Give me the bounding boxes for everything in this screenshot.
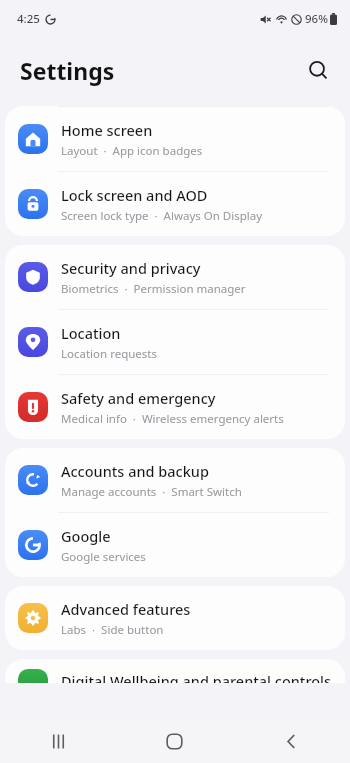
staticText: Location requests [61, 346, 157, 362]
button[interactable]: Lock screen and AOD [5, 172, 345, 236]
staticText: Manage accounts · Smart Switch [61, 484, 242, 500]
button[interactable]: Back [233, 719, 350, 763]
staticText: Safety and emergency [61, 388, 216, 408]
staticText: Medical info · Wireless emergency alerts [61, 411, 284, 427]
button[interactable]: Google [5, 513, 345, 577]
button[interactable]: Location [5, 310, 345, 374]
staticText: Screen lock type · Always On Display [61, 208, 263, 224]
button[interactable]: Home screen [5, 107, 345, 171]
staticText: Lock screen and AOD [61, 185, 208, 205]
staticText: Layout · App icon badges [61, 143, 203, 159]
button[interactable]: Advanced features [5, 586, 345, 650]
staticText: Digital Wellbeing and parental controls [61, 671, 332, 683]
staticText: Security and privacy [61, 258, 201, 278]
staticText: Labs · Side button [61, 622, 164, 638]
button[interactable]: Security and privacy [5, 245, 345, 309]
staticText: 4:25 [17, 11, 40, 27]
staticText: Accounts and backup [61, 461, 209, 481]
staticText: Google services [61, 549, 146, 565]
button[interactable]: Search [298, 50, 338, 90]
staticText: Settings [20, 55, 115, 86]
staticText: Biometrics · Permission manager [61, 281, 246, 297]
staticText: 96% [305, 11, 328, 27]
button[interactable]: Safety and emergency [5, 375, 345, 439]
button[interactable]: Digital Wellbeing and parental controls [5, 659, 345, 683]
staticText: Advanced features [61, 599, 191, 619]
button[interactable]: Home [116, 719, 233, 763]
staticText: Google [61, 526, 111, 546]
button[interactable]: Recent apps [0, 719, 116, 763]
staticText: Home screen [61, 120, 153, 140]
button[interactable]: Accounts and backup [5, 448, 345, 512]
staticText: Location [61, 323, 121, 343]
